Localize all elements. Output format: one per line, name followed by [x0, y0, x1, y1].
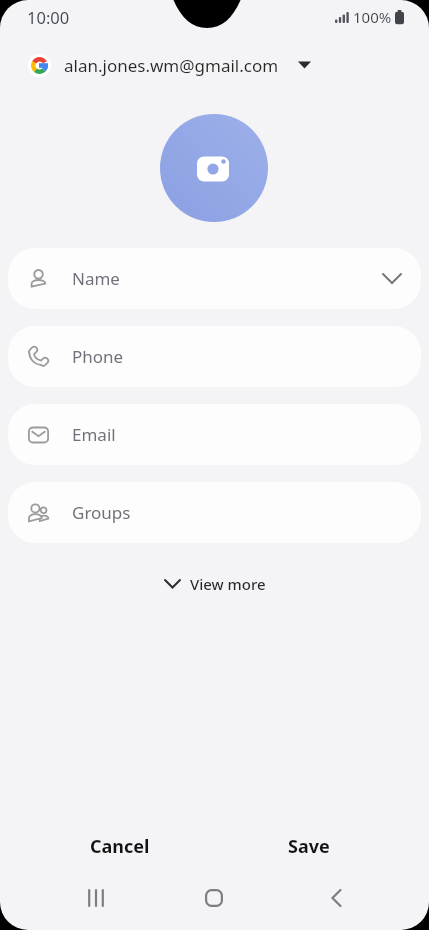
button[interactable] [76, 878, 116, 918]
staticText: alan.jones.wm@gmail.com [64, 54, 279, 77]
staticText: Save [288, 834, 330, 859]
staticText: 10:00 [27, 6, 70, 28]
staticText: Cancel [90, 834, 150, 859]
button[interactable] [160, 114, 268, 222]
button[interactable]: Name [8, 248, 421, 309]
staticText: Email [72, 423, 116, 446]
button[interactable]: Cancel [26, 824, 214, 868]
button[interactable]: Groups [8, 482, 421, 543]
button[interactable]: Phone [8, 326, 421, 387]
button[interactable]: Email [8, 404, 421, 465]
button[interactable] [194, 878, 234, 918]
staticText: View more [190, 574, 266, 594]
staticText: Groups [72, 501, 131, 524]
button[interactable] [316, 878, 356, 918]
button[interactable]: View more [0, 568, 429, 600]
button[interactable]: Save [214, 824, 403, 868]
staticText: 100% [353, 7, 392, 27]
button[interactable]: alan.jones.wm@gmail.com [28, 50, 311, 80]
staticText: Name [72, 267, 120, 290]
staticText: Phone [72, 345, 124, 368]
